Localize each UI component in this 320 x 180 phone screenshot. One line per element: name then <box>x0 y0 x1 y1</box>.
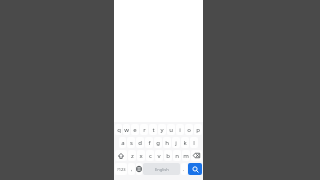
button[interactable]: , <box>128 163 135 175</box>
button[interactable]: u <box>167 124 175 135</box>
button[interactable]: l <box>190 137 198 148</box>
staticText: l <box>193 139 195 147</box>
staticText: z <box>131 152 134 160</box>
staticText: p <box>196 126 200 134</box>
button[interactable]: k <box>181 137 189 148</box>
button[interactable]: d <box>136 137 144 148</box>
staticText: ?123 <box>117 167 126 172</box>
staticText: w <box>124 126 129 134</box>
staticText: u <box>169 126 173 134</box>
button[interactable]: Change language <box>136 163 142 175</box>
button[interactable]: p <box>194 124 202 135</box>
button[interactable]: f <box>145 137 153 148</box>
button[interactable]: m <box>182 150 190 161</box>
button[interactable]: q <box>115 124 122 135</box>
staticText: , <box>131 166 133 173</box>
button[interactable]: g <box>154 137 162 148</box>
staticText: f <box>148 139 151 147</box>
button[interactable]: a <box>119 137 126 148</box>
staticText: o <box>187 126 191 134</box>
button[interactable]: Search <box>188 163 202 175</box>
button[interactable]: b <box>164 150 172 161</box>
button[interactable]: r <box>140 124 148 135</box>
button[interactable]: x <box>137 150 145 161</box>
button[interactable]: z <box>128 150 136 161</box>
staticText: k <box>183 139 187 147</box>
staticText: j <box>175 139 177 147</box>
button[interactable]: h <box>163 137 171 148</box>
staticText: a <box>121 139 125 147</box>
button[interactable]: English <box>143 163 180 175</box>
staticText: g <box>156 139 160 147</box>
button[interactable]: . <box>181 163 187 175</box>
button[interactable]: Backspace <box>191 150 202 161</box>
button[interactable]: o <box>185 124 193 135</box>
staticText: m <box>183 152 189 160</box>
staticText: y <box>160 126 164 134</box>
staticText: r <box>143 126 146 134</box>
button[interactable]: s <box>127 137 135 148</box>
staticText: c <box>149 152 152 160</box>
button[interactable]: w <box>123 124 130 135</box>
button[interactable]: t <box>149 124 157 135</box>
button[interactable]: y <box>158 124 166 135</box>
staticText: n <box>175 152 179 160</box>
staticText: English <box>155 167 169 172</box>
button[interactable]: j <box>172 137 180 148</box>
staticText: v <box>157 152 161 160</box>
button[interactable]: c <box>146 150 154 161</box>
staticText: . <box>183 166 185 173</box>
staticText: x <box>139 152 143 160</box>
staticText: i <box>179 126 181 134</box>
staticText: t <box>152 126 155 134</box>
button[interactable]: ?123 <box>115 163 127 175</box>
staticText: h <box>165 139 169 147</box>
staticText: b <box>166 152 170 160</box>
button[interactable]: n <box>173 150 181 161</box>
button[interactable]: i <box>176 124 184 135</box>
staticText: e <box>133 126 137 134</box>
staticText: d <box>138 139 142 147</box>
button[interactable]: e <box>131 124 139 135</box>
staticText: q <box>117 126 121 134</box>
button[interactable]: v <box>155 150 163 161</box>
button[interactable]: Shift <box>115 150 127 161</box>
staticText: s <box>130 139 133 147</box>
